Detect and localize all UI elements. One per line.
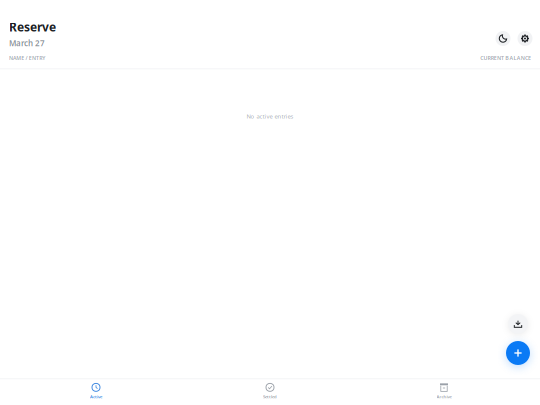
staticText: March 27: [9, 38, 45, 48]
button[interactable]: Settled: [183, 381, 357, 403]
button[interactable]: Archive: [357, 381, 531, 403]
staticText: Settled: [263, 394, 277, 399]
button[interactable]: Add entry: [506, 341, 530, 365]
button[interactable]: Export: [508, 314, 528, 334]
button[interactable]: Dark mode: [495, 31, 510, 46]
staticText: CURRENT BALANCE: [480, 54, 531, 61]
staticText: Active: [90, 394, 102, 399]
staticText: No active entries: [246, 112, 293, 120]
button[interactable]: Settings: [517, 31, 532, 46]
staticText: Archive: [436, 394, 451, 399]
staticText: NAME / ENTRY: [9, 54, 45, 61]
button[interactable]: Active: [9, 381, 183, 403]
staticText: Reserve: [9, 19, 56, 35]
